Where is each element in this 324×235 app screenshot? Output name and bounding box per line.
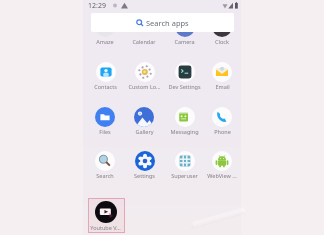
staticText: Settings bbox=[134, 172, 155, 179]
button[interactable]: WebView ... bbox=[203, 151, 241, 181]
staticText: Messaging bbox=[170, 128, 199, 135]
staticText: Clock bbox=[215, 38, 229, 45]
button[interactable]: Files bbox=[86, 107, 124, 137]
staticText: Superuser bbox=[171, 172, 198, 179]
button[interactable]: Phone bbox=[203, 107, 241, 137]
staticText: Custom Lo... bbox=[128, 83, 161, 90]
staticText: Camera bbox=[174, 38, 195, 45]
button[interactable]: Custom Lo... bbox=[125, 62, 163, 92]
staticText: Search apps bbox=[146, 18, 189, 28]
button[interactable]: Settings bbox=[125, 151, 163, 181]
button[interactable]: Search bbox=[86, 151, 124, 181]
button[interactable]: Calendar bbox=[125, 17, 163, 47]
staticText: Files bbox=[99, 128, 111, 135]
button[interactable]: Camera bbox=[165, 17, 203, 47]
staticText: 12:29 bbox=[88, 1, 106, 11]
staticText: Phone bbox=[214, 128, 231, 135]
staticText: WebView ... bbox=[207, 172, 237, 179]
button[interactable]: Youtube V... bbox=[86, 201, 124, 231]
button[interactable]: Superuser bbox=[165, 151, 203, 181]
staticText: Gallery bbox=[135, 128, 154, 135]
button[interactable]: Amaze bbox=[86, 17, 124, 47]
staticText: Contacts bbox=[94, 83, 117, 90]
button[interactable]: Dev Settings bbox=[165, 62, 203, 92]
staticText: Calendar bbox=[132, 38, 156, 45]
staticText: Search bbox=[96, 172, 114, 179]
staticText: Dev Settings bbox=[168, 83, 201, 90]
button[interactable]: Email bbox=[203, 62, 241, 92]
staticText: Amaze bbox=[96, 38, 114, 45]
button[interactable]: Gallery bbox=[125, 107, 163, 137]
button[interactable]: Contacts bbox=[86, 62, 124, 92]
staticText: Email bbox=[215, 83, 230, 90]
button[interactable]: Search apps bbox=[91, 13, 234, 32]
staticText: Youtube V... bbox=[90, 224, 121, 231]
button[interactable]: Clock bbox=[203, 17, 241, 47]
button[interactable]: Messaging bbox=[165, 107, 203, 137]
